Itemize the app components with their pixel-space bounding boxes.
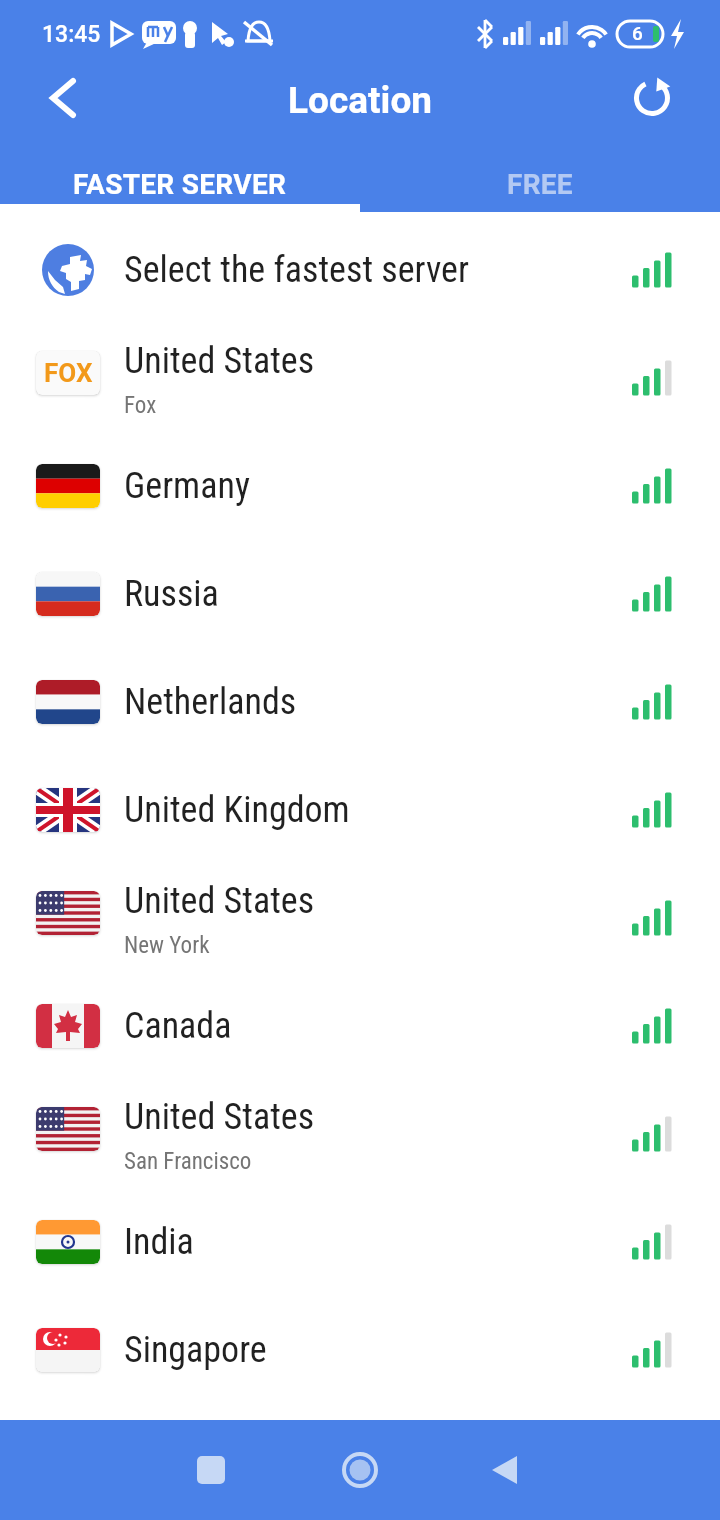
staticText: Select the fastest server	[124, 249, 469, 291]
button[interactable]: FASTER SERVER	[0, 130, 360, 212]
staticText: Location	[288, 79, 433, 122]
button[interactable]: United Kingdom	[0, 756, 720, 864]
staticText: FOX	[44, 358, 93, 388]
button[interactable]: United States	[0, 864, 720, 972]
staticText: United States	[124, 880, 315, 922]
staticText: New York	[124, 932, 210, 959]
button[interactable]	[476, 1441, 534, 1499]
button[interactable]: India	[0, 1188, 720, 1296]
staticText: FREE	[507, 168, 573, 201]
staticText: Canada	[124, 1005, 232, 1047]
button[interactable]: FREE	[360, 130, 720, 212]
staticText: 13:45	[42, 21, 101, 48]
button[interactable]: Netherlands	[0, 648, 720, 756]
button[interactable]: Select the fastest server	[0, 216, 720, 324]
staticText: Fox	[124, 392, 157, 419]
staticText: San Francisco	[124, 1148, 252, 1175]
button[interactable]: FOX	[0, 324, 720, 432]
staticText: India	[124, 1221, 194, 1263]
staticText: Germany	[124, 465, 250, 507]
staticText: United Kingdom	[124, 789, 350, 831]
staticText: FASTER SERVER	[73, 168, 287, 201]
button[interactable]: United States	[0, 1080, 720, 1188]
button[interactable]: Singapore	[0, 1296, 720, 1404]
button[interactable]	[182, 1441, 240, 1499]
button[interactable]: Russia	[0, 540, 720, 648]
staticText: Netherlands	[124, 681, 297, 723]
staticText: Russia	[124, 573, 219, 615]
button[interactable]: Canada	[0, 972, 720, 1080]
button[interactable]	[331, 1441, 389, 1499]
staticText: 6	[632, 22, 643, 44]
button[interactable]	[624, 70, 680, 126]
button[interactable]: Germany	[0, 432, 720, 540]
staticText: United States	[124, 1096, 315, 1138]
staticText: United States	[124, 340, 315, 382]
staticText: Singapore	[124, 1329, 267, 1371]
button[interactable]	[36, 70, 92, 126]
